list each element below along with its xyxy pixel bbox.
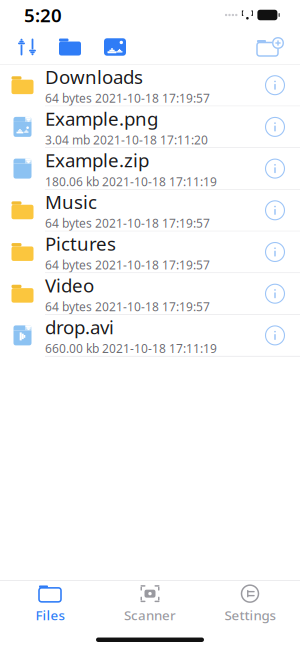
staticText: Music xyxy=(45,189,97,214)
button[interactable]: Music xyxy=(0,190,300,231)
button[interactable]: Downloads xyxy=(0,65,300,106)
staticText: Scanner xyxy=(124,606,176,624)
button[interactable]: Files xyxy=(0,581,100,628)
staticText: 64 bytes 2021-10-18 17:19:57 xyxy=(45,215,210,231)
button[interactable]: Sort xyxy=(6,30,48,64)
staticText: 64 bytes 2021-10-18 17:19:57 xyxy=(45,299,210,314)
staticText: drop.avi xyxy=(45,314,114,339)
button[interactable]: drop.avi xyxy=(0,315,300,356)
button[interactable]: Example.zip xyxy=(0,148,300,189)
staticText: Files xyxy=(35,606,64,624)
staticText: Downloads xyxy=(45,64,143,89)
staticText: 660.00 kb 2021-10-18 17:11:19 xyxy=(45,340,217,356)
staticText: Video xyxy=(45,273,94,298)
button[interactable]: Video xyxy=(0,273,300,314)
button[interactable]: Example.png xyxy=(0,106,300,147)
button[interactable]: Folders xyxy=(48,30,92,64)
staticText: 64 bytes 2021-10-18 17:19:57 xyxy=(45,257,210,273)
staticText: Settings xyxy=(224,606,275,624)
button[interactable]: Scanner xyxy=(100,581,200,628)
staticText: 180.06 kb 2021-10-18 17:11:19 xyxy=(45,173,217,189)
staticText: Pictures xyxy=(45,231,116,256)
staticText: 64 bytes 2021-10-18 17:19:57 xyxy=(45,90,210,106)
staticText: 5:20 xyxy=(24,3,62,27)
button[interactable]: Settings xyxy=(200,581,300,628)
button[interactable]: Photos xyxy=(92,30,138,64)
staticText: Example.png xyxy=(45,106,158,131)
staticText: 3.04 mb 2021-10-18 17:11:20 xyxy=(45,132,208,148)
button[interactable]: New Folder xyxy=(248,30,292,64)
staticText: Example.zip xyxy=(45,148,149,172)
button[interactable]: Pictures xyxy=(0,231,300,272)
